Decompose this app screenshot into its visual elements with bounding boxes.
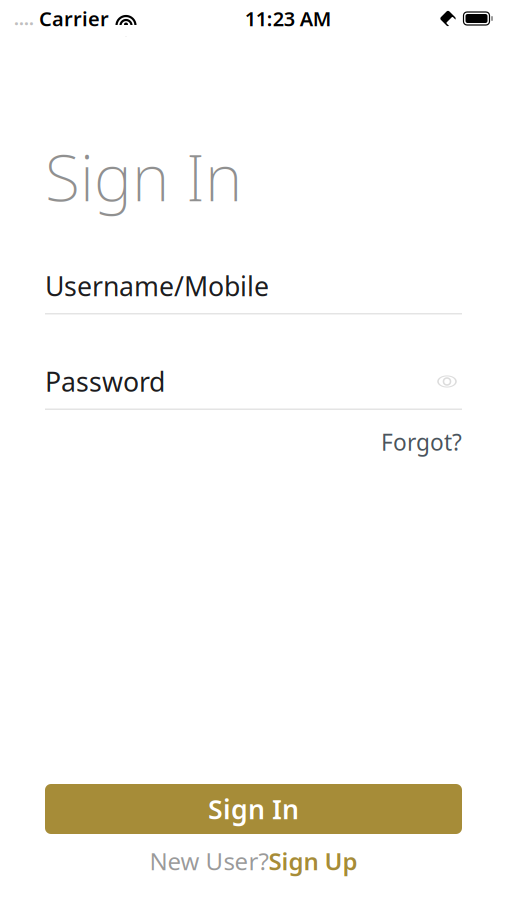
button[interactable]: Forgot?	[381, 427, 462, 457]
staticText: Sign Up	[268, 845, 357, 877]
staticText: New User?	[149, 845, 268, 877]
staticText: Carrier	[34, 5, 109, 32]
staticText: Forgot?	[381, 427, 462, 457]
staticText: Sign In	[45, 134, 242, 219]
staticText: Sign In	[208, 791, 299, 827]
staticText: ....	[14, 7, 34, 30]
staticText: 11:23 AM	[245, 5, 332, 32]
staticText: Password	[45, 364, 165, 399]
button[interactable]: Show password	[432, 368, 462, 394]
button[interactable]: Sign In	[45, 784, 462, 834]
staticText: Username/Mobile	[45, 268, 269, 304]
button[interactable]: New User?	[0, 844, 507, 878]
